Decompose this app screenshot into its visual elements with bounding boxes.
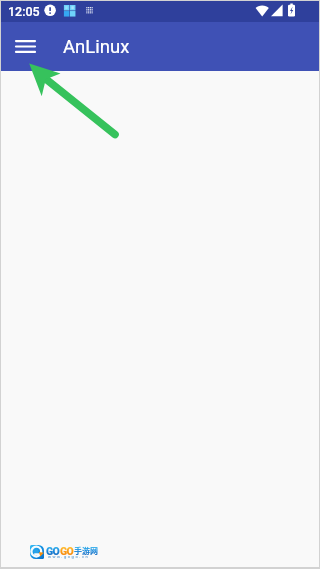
button[interactable]: Open navigation drawer [5,26,45,66]
staticText: 手游网 [74,545,98,557]
staticText: GO [46,545,60,557]
staticText: 12:05 [8,4,40,19]
staticText: www.gogo.cn [48,554,90,559]
staticText: GO [60,545,74,557]
staticText: AnLinux [63,36,130,58]
